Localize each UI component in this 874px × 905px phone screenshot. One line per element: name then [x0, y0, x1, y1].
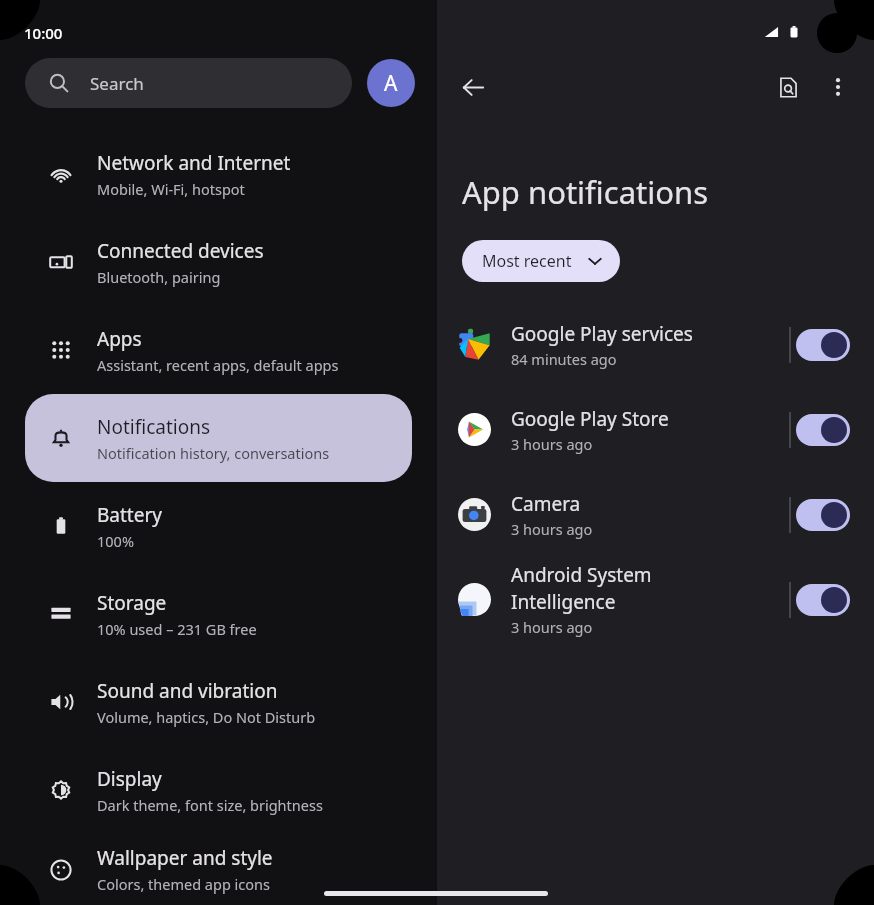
staticText: Sound and vibration — [97, 678, 278, 704]
staticText: 100% — [97, 531, 134, 551]
staticText: Network and Internet — [97, 150, 291, 176]
button[interactable]: Toggle notifications — [796, 414, 850, 446]
button[interactable]: More options — [816, 65, 860, 109]
button[interactable]: Sound and vibration — [25, 658, 412, 746]
staticText: Dark theme, font size, brightness — [97, 795, 323, 815]
staticText: App notifications — [462, 171, 708, 213]
button[interactable]: Google Play Store — [437, 387, 874, 472]
staticText: Colors, themed app icons — [97, 874, 270, 894]
button[interactable]: Toggle notifications — [796, 329, 850, 361]
staticText: Notification history, conversations — [97, 443, 330, 463]
button[interactable]: Apps — [25, 306, 412, 394]
staticText: Most recent — [482, 250, 572, 272]
staticText: Mobile, Wi-Fi, hotspot — [97, 179, 245, 199]
button[interactable]: Battery — [25, 482, 412, 570]
button[interactable]: Search — [25, 58, 352, 108]
staticText: Wallpaper and style — [97, 845, 273, 871]
button[interactable]: Google Play services — [437, 302, 874, 387]
staticText: Google Play Store — [511, 406, 669, 432]
staticText: 3 hours ago — [511, 434, 593, 454]
button[interactable]: Notifications — [25, 394, 412, 482]
staticText: Apps — [97, 326, 142, 352]
staticText: 3 hours ago — [511, 519, 593, 539]
staticText: 10:00 — [24, 23, 63, 43]
staticText: Assistant, recent apps, default apps — [97, 355, 339, 375]
button[interactable]: Android System Intelligence — [437, 557, 874, 642]
button[interactable]: Search settings — [766, 65, 810, 109]
button[interactable]: Wallpaper and style — [25, 834, 412, 905]
staticText: Search — [90, 72, 144, 95]
staticText: Display — [97, 766, 162, 792]
button[interactable]: Display — [25, 746, 412, 834]
staticText: Volume, haptics, Do Not Disturb — [97, 707, 316, 727]
staticText: 84 minutes ago — [511, 349, 617, 369]
button[interactable]: Connected devices — [25, 218, 412, 306]
button[interactable]: Toggle notifications — [796, 499, 850, 531]
staticText: Bluetooth, pairing — [97, 267, 221, 287]
button[interactable]: Storage — [25, 570, 412, 658]
button[interactable]: Network and Internet — [25, 130, 412, 218]
staticText: Storage — [97, 590, 167, 616]
staticText: A — [384, 69, 398, 98]
staticText: 3 hours ago — [511, 617, 593, 637]
staticText: Notifications — [97, 414, 211, 440]
button[interactable]: Account — [367, 59, 415, 107]
button[interactable]: Toggle notifications — [796, 584, 850, 616]
staticText: Connected devices — [97, 238, 264, 264]
staticText: Google Play services — [511, 321, 693, 347]
button[interactable]: Camera — [437, 472, 874, 557]
button[interactable]: Most recent — [462, 240, 620, 282]
staticText: Battery — [97, 502, 162, 528]
staticText: Android System Intelligence — [511, 562, 652, 615]
staticText: 10% used – 231 GB free — [97, 619, 257, 639]
button[interactable]: Back — [451, 65, 495, 109]
staticText: Camera — [511, 491, 581, 517]
